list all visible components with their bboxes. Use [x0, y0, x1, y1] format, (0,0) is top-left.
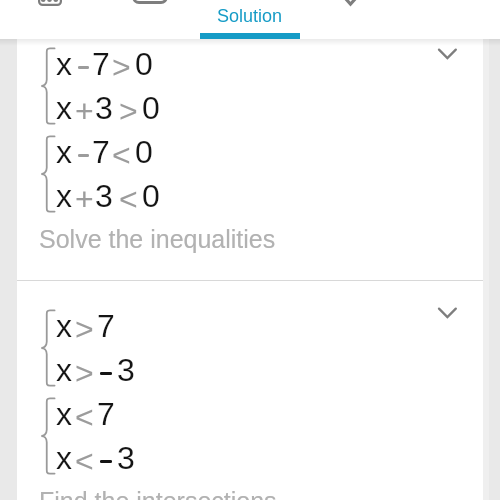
- staticText: x: [56, 308, 72, 344]
- staticText: 7: [92, 46, 110, 82]
- staticText: x: [56, 178, 72, 214]
- button[interactable]: Graph: [132, 0, 168, 4]
- staticText: <: [75, 399, 94, 435]
- staticText: x: [56, 396, 72, 432]
- button[interactable]: Expand step: [429, 41, 465, 65]
- staticText: 3: [95, 178, 113, 214]
- staticText: 0: [142, 90, 160, 126]
- staticText: 3: [117, 352, 135, 388]
- staticText: x: [56, 46, 72, 82]
- staticText: Solution: [217, 6, 283, 26]
- staticText: >: [75, 355, 94, 391]
- staticText: >: [119, 93, 138, 129]
- button[interactable]: Expand step: [429, 300, 465, 324]
- staticText: 0: [142, 178, 160, 214]
- staticText: Find the intersections: [39, 487, 277, 500]
- staticText: <: [75, 443, 94, 479]
- staticText: x: [56, 352, 72, 388]
- staticText: >: [112, 49, 131, 85]
- button[interactable]: x: [17, 281, 483, 500]
- staticText: 7: [97, 308, 115, 344]
- staticText: 0: [135, 46, 153, 82]
- staticText: x: [56, 90, 72, 126]
- staticText: x: [56, 134, 72, 170]
- staticText: 0: [135, 134, 153, 170]
- staticText: >: [75, 311, 94, 347]
- staticText: 3: [117, 440, 135, 476]
- button[interactable]: Solution: [200, 0, 300, 39]
- button[interactable]: Steps: [38, 0, 62, 6]
- button[interactable]: Collapse: [339, 0, 362, 6]
- staticText: +: [75, 181, 94, 217]
- staticText: Solve the inequalities: [39, 225, 276, 253]
- staticText: <: [112, 137, 131, 173]
- staticText: 7: [97, 396, 115, 432]
- staticText: x: [56, 440, 72, 476]
- staticText: <: [119, 181, 138, 217]
- staticText: +: [75, 93, 94, 129]
- button[interactable]: x: [17, 22, 483, 280]
- staticText: 7: [92, 134, 110, 170]
- staticText: 3: [95, 90, 113, 126]
